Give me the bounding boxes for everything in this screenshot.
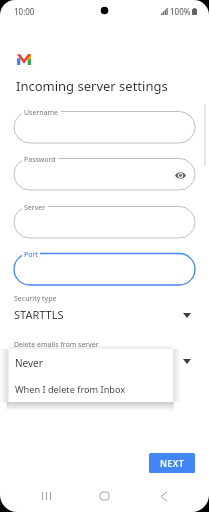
staticText: Never bbox=[14, 353, 45, 368]
button[interactable]: When I delete from Inbox bbox=[9, 376, 173, 402]
staticText: Security type bbox=[14, 294, 57, 304]
button[interactable]: Never bbox=[9, 349, 173, 376]
button[interactable]: Back bbox=[152, 484, 176, 508]
button[interactable]: Server bbox=[14, 201, 195, 238]
button[interactable]: Port bbox=[14, 248, 195, 285]
staticText: Password bbox=[24, 155, 56, 165]
staticText: Never bbox=[15, 356, 43, 370]
staticText: Username bbox=[24, 108, 59, 118]
staticText: STARTTLS bbox=[14, 307, 64, 322]
staticText: Delete emails from server bbox=[14, 340, 99, 350]
button[interactable]: Home bbox=[92, 484, 116, 508]
button[interactable]: Recent apps bbox=[34, 484, 58, 508]
button[interactable]: Security type bbox=[14, 294, 195, 334]
staticText: Incoming server settings bbox=[16, 77, 168, 95]
staticText: Port bbox=[24, 250, 38, 260]
button[interactable]: Username bbox=[14, 106, 195, 143]
staticText: Server bbox=[24, 203, 46, 213]
button[interactable]: NEXT bbox=[149, 453, 195, 473]
staticText: 10:00 bbox=[14, 6, 35, 17]
button[interactable]: Delete emails from server bbox=[14, 340, 195, 380]
staticText: 100% bbox=[170, 6, 191, 17]
staticText: NEXT bbox=[160, 457, 185, 469]
button[interactable]: Password bbox=[14, 153, 195, 190]
staticText: When I delete from Inbox bbox=[15, 383, 126, 396]
button[interactable]: Show password bbox=[173, 168, 187, 182]
